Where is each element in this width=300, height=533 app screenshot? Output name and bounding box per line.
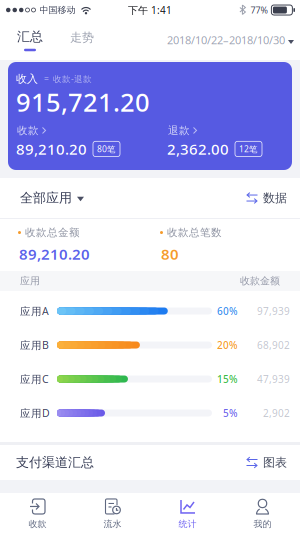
staticText: 80笔 — [97, 143, 116, 155]
button[interactable]: 数据 — [246, 191, 300, 205]
staticText: 77% — [250, 4, 267, 16]
staticText: 下午 1:41 — [128, 3, 172, 17]
staticText: 收款总金额 — [25, 226, 80, 239]
staticText: 收款金额 — [240, 275, 280, 287]
staticText: 915,721.20 — [16, 85, 150, 119]
button[interactable]: 统计 — [150, 493, 225, 533]
staticText: 统计 — [178, 518, 196, 530]
staticText: 2018/10/22–2018/10/30 — [167, 33, 285, 47]
button[interactable]: 全部应用 — [0, 190, 84, 206]
staticText: 80 — [161, 244, 179, 264]
staticText: 89,210.20 — [16, 139, 87, 159]
staticText: 应用B — [20, 338, 49, 352]
staticText: 20% — [217, 338, 238, 352]
button[interactable]: 汇总 — [0, 29, 43, 51]
staticText: 收款 — [28, 518, 46, 530]
staticText: 5% — [223, 406, 238, 420]
staticText: 流水 — [103, 518, 121, 530]
staticText: 89,210.20 — [19, 244, 90, 264]
staticText: 数据 — [263, 191, 287, 205]
button[interactable]: 流水 — [75, 493, 150, 533]
staticText: 应用C — [20, 372, 49, 386]
staticText: 收款 — [17, 124, 39, 137]
staticText: 应用A — [20, 304, 49, 318]
button[interactable]: 退款 — [168, 124, 197, 137]
staticText: 应用D — [20, 406, 50, 420]
staticText: 68,902 — [257, 338, 290, 352]
staticText: 15% — [217, 372, 238, 386]
staticText: 支付渠道汇总 — [16, 454, 94, 470]
staticText: 收入 — [16, 72, 38, 85]
button[interactable]: 收款 — [0, 493, 75, 533]
button[interactable]: 图表 — [246, 455, 300, 470]
button[interactable]: 2018/10/22–2018/10/30 — [167, 33, 300, 47]
staticText: 图表 — [263, 455, 287, 470]
staticText: 2,902 — [263, 406, 290, 420]
button[interactable]: 收款 — [17, 124, 46, 137]
staticText: 12笔 — [239, 143, 258, 155]
staticText: 走势 — [70, 30, 94, 45]
staticText: 汇总 — [17, 29, 43, 45]
button[interactable]: 走势 — [43, 30, 94, 50]
staticText: 收款总笔数 — [167, 226, 222, 239]
staticText: 我的 — [253, 518, 271, 530]
staticText: 中国移动 — [39, 4, 75, 16]
staticText: 47,939 — [257, 372, 290, 386]
staticText: 全部应用 — [20, 190, 72, 206]
staticText: 退款 — [168, 124, 190, 137]
staticText: 60% — [217, 304, 238, 318]
staticText: 97,939 — [257, 304, 290, 318]
staticText: 应用 — [20, 275, 40, 287]
staticText: = 收款-退款 — [44, 73, 92, 84]
button[interactable]: 我的 — [225, 493, 300, 533]
staticText: 2,362.00 — [167, 139, 229, 159]
